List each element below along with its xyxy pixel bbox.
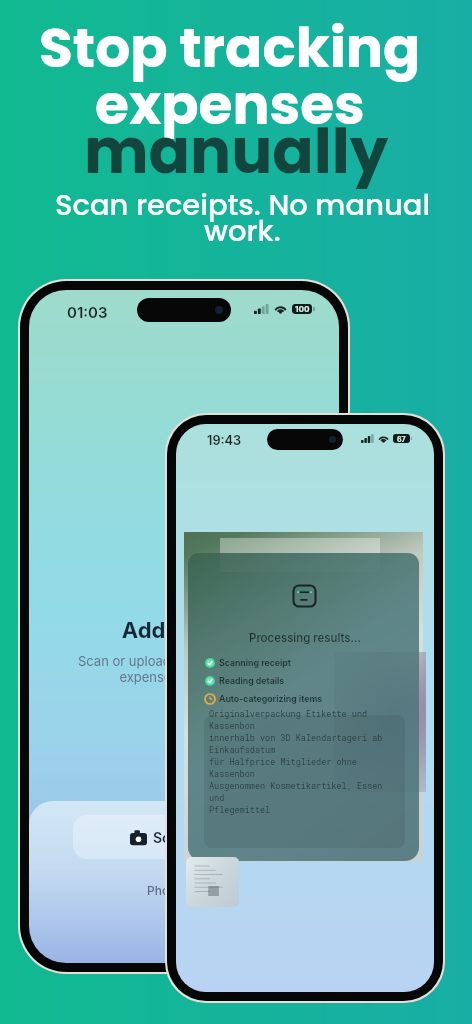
- staticText: 01:03: [67, 303, 108, 321]
- staticText: Stop tracking: [39, 9, 421, 86]
- staticText: Reading details: [219, 675, 285, 686]
- staticText: manually: [84, 109, 389, 194]
- staticText: 100: [295, 304, 310, 314]
- staticText: 19:43: [207, 433, 242, 448]
- staticText: Auto-categorizing items: [219, 693, 323, 704]
- staticText: 67: [397, 435, 406, 443]
- staticText: Scan or upload a photo to log your expen…: [29, 653, 339, 685]
- staticText: Processing results...: [176, 631, 434, 645]
- staticText: Originalverpackung Etikette und Kassenbo…: [209, 708, 383, 815]
- staticText: work.: [204, 211, 281, 252]
- staticText: Scan receipt: [153, 829, 238, 846]
- staticText: Scanning receipt: [219, 657, 291, 668]
- other: Camera: [130, 829, 147, 846]
- button[interactable]: Camera: [73, 815, 295, 859]
- staticText: Scan receipts. No manual: [55, 185, 431, 226]
- staticText: expenses: [95, 66, 365, 143]
- button[interactable]: Photo library: [147, 883, 221, 898]
- staticText: Add receipt: [29, 617, 339, 644]
